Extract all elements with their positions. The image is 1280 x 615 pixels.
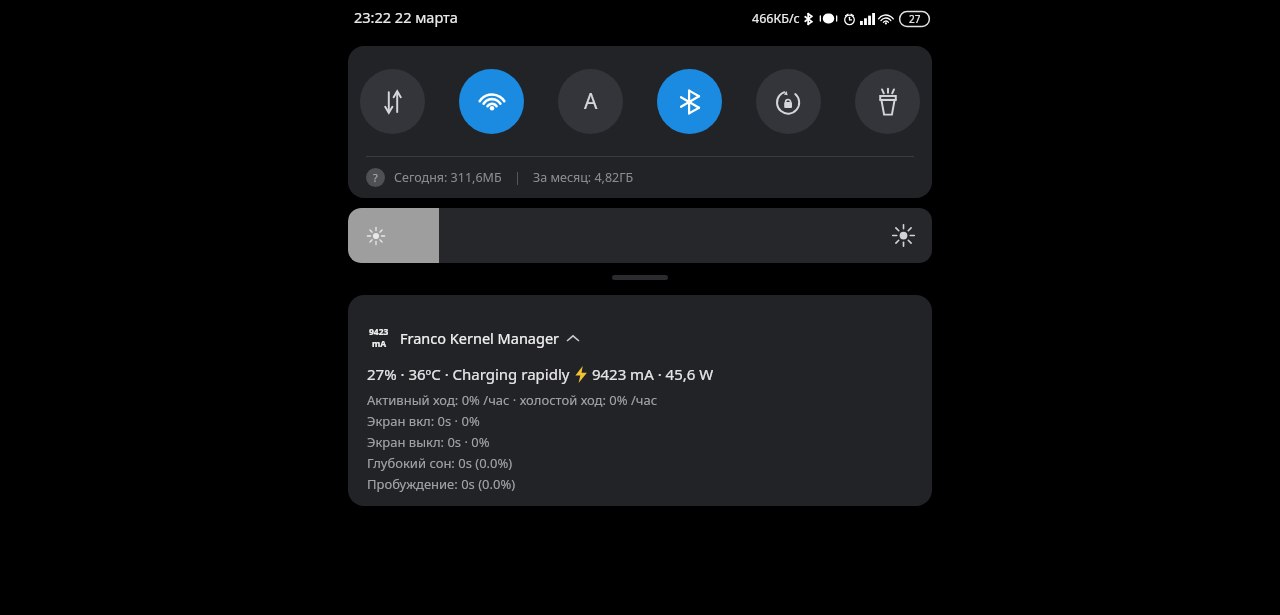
staticText: Экран выкл: 0s · 0% [367, 433, 490, 451]
button[interactable]: Wi-Fi [459, 69, 524, 134]
button[interactable]: Flashlight [855, 69, 920, 134]
staticText: Глубокий сон: 0s (0.0%) [367, 454, 513, 472]
staticText: 9423 [369, 326, 389, 338]
staticText: Активный ход: 0% /час · холостой ход: 0%… [367, 391, 658, 409]
button[interactable]: 9423 [348, 295, 932, 506]
staticText: A [584, 87, 598, 116]
staticText: 466КБ/с [752, 10, 800, 27]
staticText: Пробуждение: 0s (0.0%) [367, 475, 516, 493]
button[interactable]: Expand [612, 275, 668, 280]
button[interactable]: Bluetooth [657, 69, 722, 134]
staticText: 23:22 22 марта [354, 7, 458, 27]
staticText: | [514, 169, 521, 186]
staticText: Экран вкл: 0s · 0% [367, 412, 480, 430]
button[interactable]: ? [366, 157, 932, 197]
staticText: 9423 mA · 45,6 W [588, 364, 714, 384]
button[interactable]: Brightness [348, 208, 932, 263]
button[interactable]: Auto rotate [756, 69, 821, 134]
button[interactable]: Mobile data [360, 69, 425, 134]
staticText: За месяц: 4,82ГБ [533, 169, 634, 186]
staticText: Franco Kernel Manager [400, 328, 560, 348]
staticText: ? [373, 170, 378, 185]
staticText: 27% · 36ºC · Charging rapidly [367, 364, 574, 384]
staticText: Сегодня: 311,6МБ [394, 169, 502, 186]
button[interactable]: Auto brightness [558, 69, 623, 134]
staticText: 27 [909, 12, 921, 26]
staticText: mA [372, 338, 387, 350]
